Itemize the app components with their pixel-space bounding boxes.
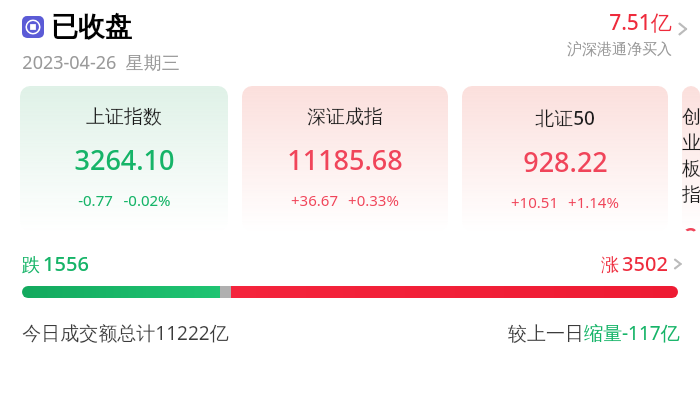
staticText: 上证指数 [86, 105, 162, 129]
staticText: 沪深港通净买入 [567, 40, 672, 59]
staticText: +0.33% [348, 190, 399, 210]
button[interactable]: 7.51亿 [567, 8, 690, 59]
staticText: +1.14% [568, 192, 619, 212]
staticText: 1556 [43, 250, 89, 277]
button[interactable]: 上证指数 [20, 86, 228, 232]
staticText: 3502 [622, 250, 668, 277]
staticText: 2023-04-26 星期三 [22, 50, 180, 75]
other: Market closed [22, 16, 44, 38]
staticText: 深证成指 [307, 105, 383, 129]
staticText: 创业板指 [682, 105, 700, 207]
staticText: -0.77 [78, 190, 113, 210]
button[interactable]: 深证成指 [242, 86, 448, 232]
staticText: 涨 [601, 254, 619, 277]
staticText: 3264.10 [74, 141, 175, 178]
staticText: -0.02% [123, 190, 171, 210]
staticText: 11185.68 [287, 141, 403, 178]
staticText: 今日成交额总计11222亿 [22, 320, 229, 346]
button[interactable]: 创业板指 [682, 86, 700, 232]
staticText: 北证50 [535, 105, 595, 131]
staticText: 跌 [22, 254, 40, 277]
staticText: 928.22 [523, 143, 608, 180]
staticText: +10.51 [511, 192, 558, 212]
button[interactable]: 北证50 [462, 86, 668, 232]
button[interactable]: 涨 [601, 250, 684, 277]
staticText: 2300.00 [682, 219, 700, 232]
staticText: 7.51亿 [609, 8, 672, 37]
staticText: 较上一日缩量-117亿 [508, 320, 680, 346]
staticText: +36.67 [291, 190, 338, 210]
staticText: 已收盘 [51, 10, 132, 44]
